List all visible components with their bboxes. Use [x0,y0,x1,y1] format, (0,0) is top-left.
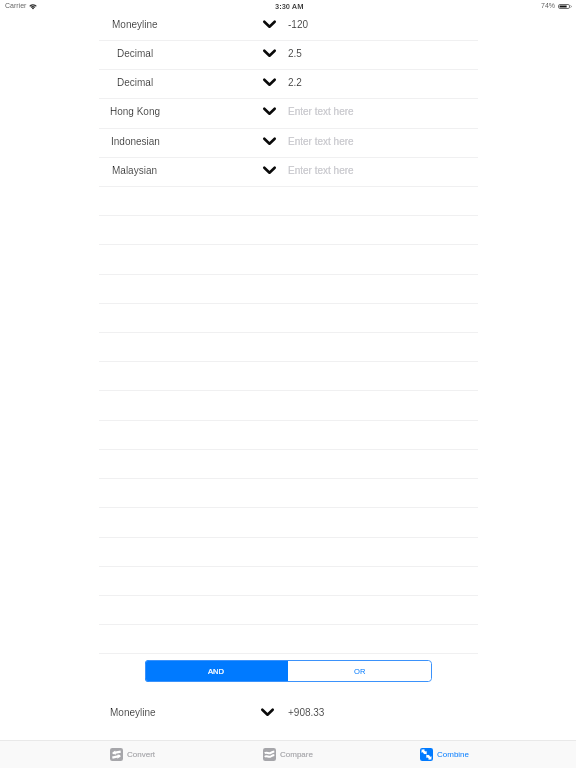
button[interactable]: Decimal [99,69,478,98]
staticText: Enter text here [288,136,354,147]
staticText: Compare [280,750,313,759]
button[interactable]: OR [288,660,432,682]
button[interactable]: Decimal [99,40,478,69]
staticText: 74% [541,2,556,10]
staticText: 2.5 [288,48,302,59]
staticText: 3:30 AM [275,2,304,10]
button[interactable]: Combine [415,741,475,768]
staticText: Malaysian [112,165,158,176]
staticText: Hong Kong [110,106,161,117]
staticText: Convert [127,750,156,759]
staticText: +908.33 [288,707,325,718]
staticText: Moneyline [112,19,158,30]
staticText: OR [354,667,366,675]
staticText: Decimal [117,77,154,88]
staticText: -120 [288,19,309,30]
staticText: Indonesian [111,136,160,147]
button[interactable]: Hong Kong [99,98,478,127]
button[interactable]: Compare [258,741,318,768]
button[interactable]: Indonesian [99,128,478,157]
staticText: 2.2 [288,77,302,88]
staticText: Enter text here [288,106,354,117]
staticText: Moneyline [110,707,156,718]
button[interactable]: Malaysian [99,157,478,186]
staticText: AND [208,667,225,675]
staticText: Carrier [5,2,27,10]
button[interactable]: AND [145,660,288,682]
button[interactable]: Moneyline [99,11,478,40]
staticText: Enter text here [288,165,354,176]
button[interactable]: Convert [105,741,161,768]
staticText: Decimal [117,48,154,59]
button[interactable]: Moneyline [99,698,478,727]
staticText: Combine [437,750,470,759]
